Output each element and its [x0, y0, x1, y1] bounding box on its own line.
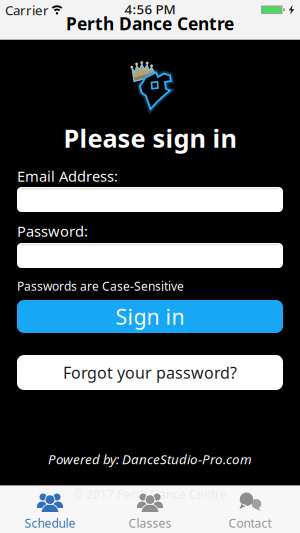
staticText: Sign in	[115, 302, 184, 331]
staticText: Forgot your password?	[63, 362, 237, 383]
button[interactable]: Email Address	[17, 187, 283, 212]
staticText: Passwords are Case-Sensitive	[17, 278, 184, 294]
staticText: Password:	[17, 221, 88, 241]
staticText: Perth Dance Centre	[66, 12, 234, 35]
staticText: Schedule	[24, 515, 75, 531]
staticText: Powered by: DanceStudio-Pro.com	[48, 450, 252, 468]
button[interactable]: Password	[17, 243, 283, 268]
staticText: Classes	[128, 515, 171, 531]
button[interactable]: Forgot your password?	[17, 355, 283, 390]
staticText: Carrier	[5, 1, 49, 19]
button[interactable]: Sign in	[17, 300, 283, 333]
staticText: Please sign in	[63, 121, 236, 155]
button[interactable]: Classes	[100, 485, 200, 533]
staticText: © 2017 Perth Dance Centre	[73, 486, 227, 502]
staticText: Email Address:	[17, 166, 118, 186]
button[interactable]: Schedule	[0, 485, 100, 533]
button[interactable]: Contact	[200, 485, 300, 533]
staticText: 4:56 PM	[124, 0, 175, 18]
staticText: Contact	[228, 515, 271, 531]
